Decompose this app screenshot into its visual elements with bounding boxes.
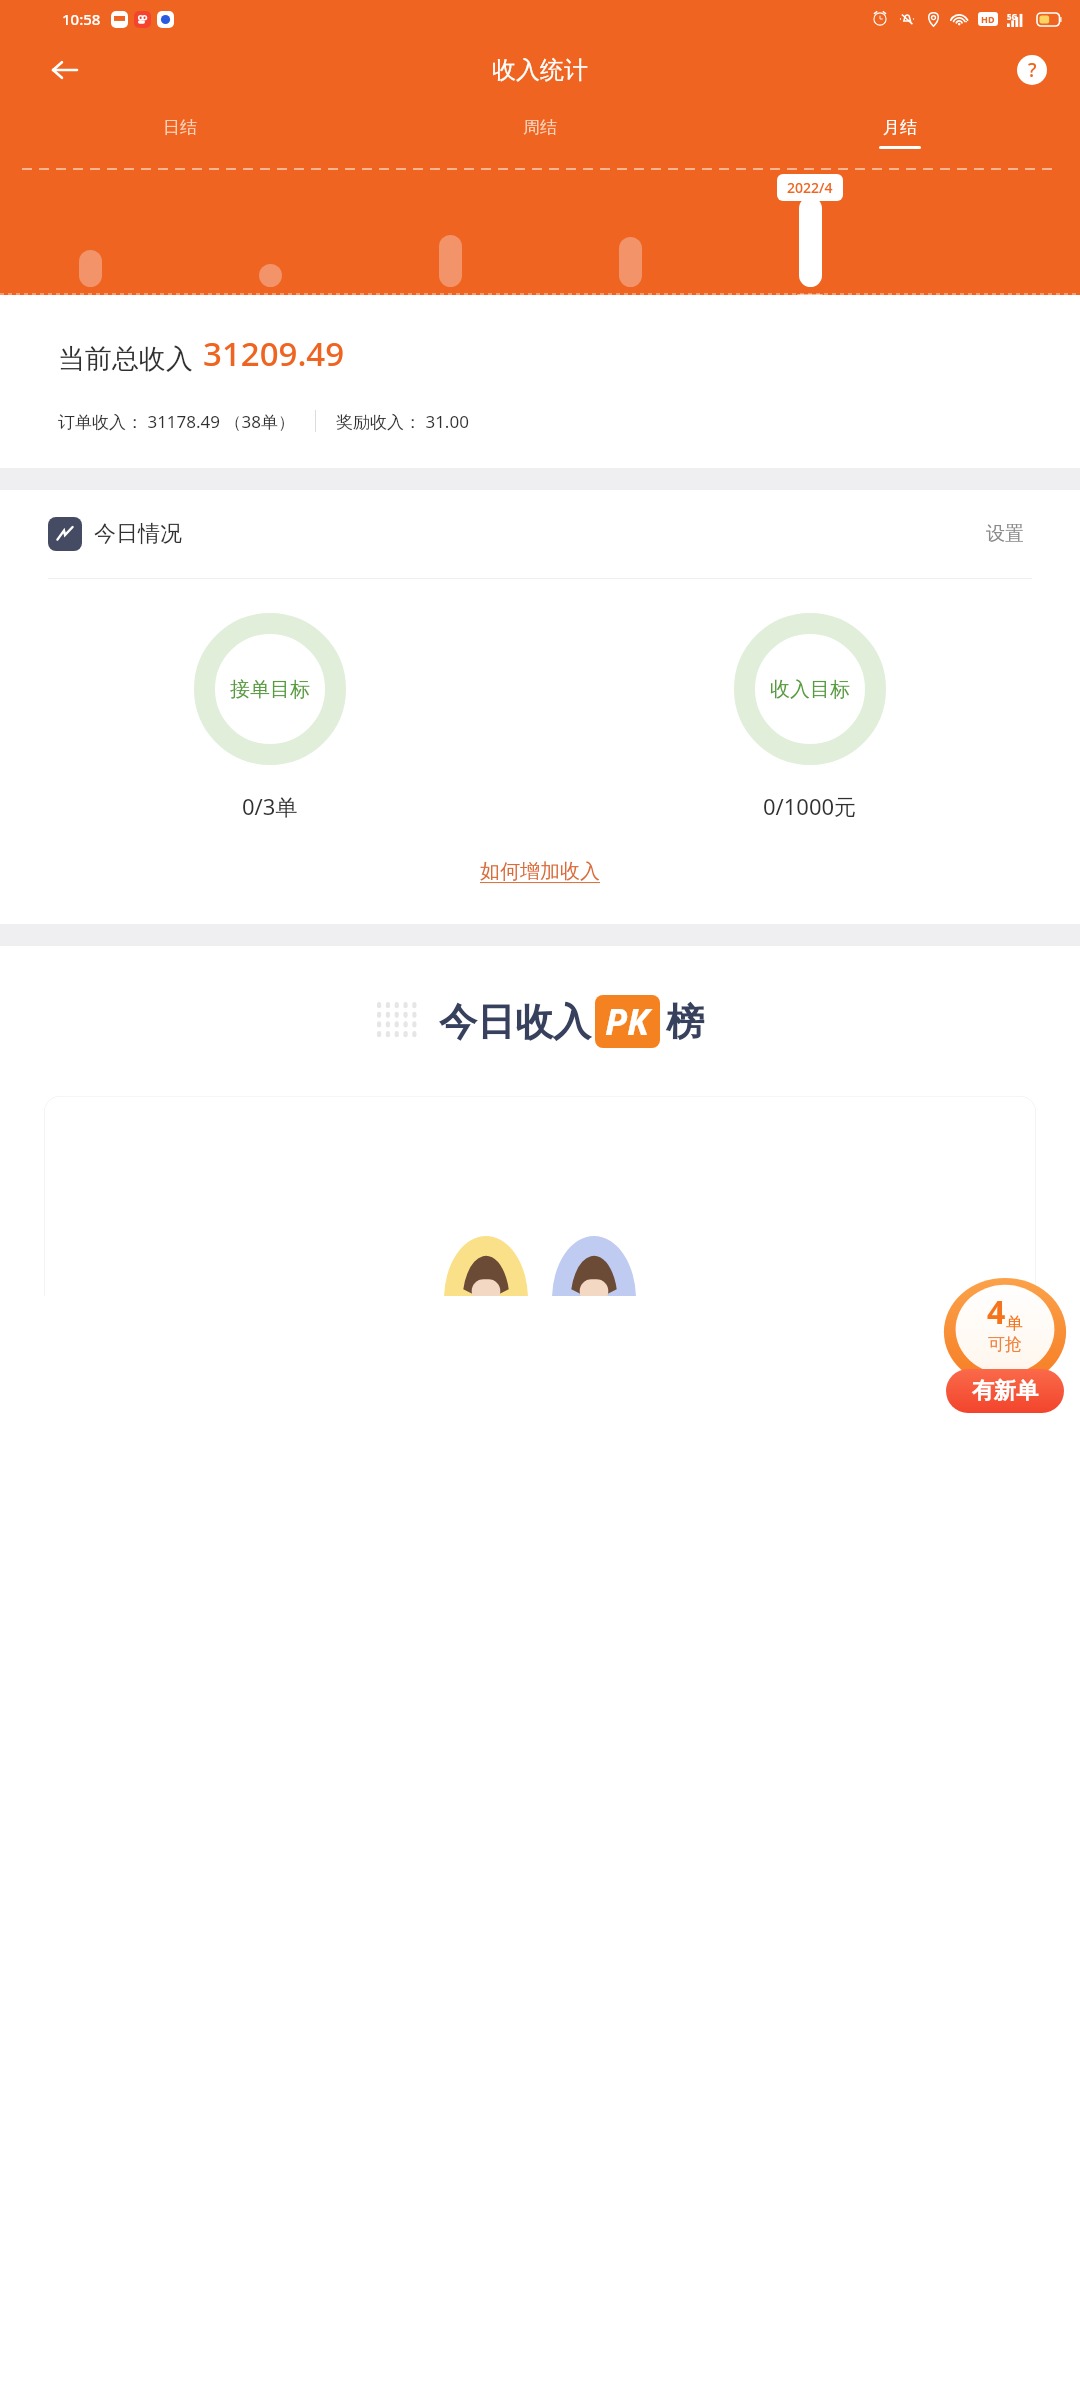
staticText: 设置 [986,522,1024,546]
button[interactable]: 4单可抢 有新单 [940,1278,1070,1413]
staticText: 月结 [883,117,917,138]
button[interactable]: 月结 [720,102,1080,164]
staticText: 收入目标 [770,677,850,702]
staticText: 奖励收入： 31.00 [336,410,469,433]
staticText: HD [981,13,995,25]
staticText: 今日情况 [94,520,182,548]
staticText: 5G [1007,11,1018,22]
staticText: 如何增加收入 [480,859,600,884]
staticText: 可抢 [988,1334,1022,1355]
button[interactable]: Back [40,46,88,94]
staticText: 订单收入： 31178.49 （38单） [58,410,295,433]
button[interactable]: 接单目标 [0,613,540,821]
staticText: 0/1000元 [763,791,857,821]
button[interactable]: 今日收入 [0,946,1080,1096]
button[interactable]: 日结 [0,102,360,164]
button[interactable]: 如何增加收入 [468,853,612,890]
staticText: 4 [987,1290,1006,1334]
staticText: 2022/4 [787,178,833,197]
button[interactable]: 收入目标 [540,613,1080,821]
staticText: 收入统计 [492,55,588,85]
staticText: 今日收入 [439,998,591,1046]
staticText: 31209.49 [203,331,345,376]
button[interactable]: Help [1010,48,1054,92]
button[interactable]: 设置 [978,514,1032,554]
staticText: 周结 [523,117,557,138]
staticText: PK [605,997,650,1046]
staticText: ? [1028,57,1037,83]
button[interactable] [44,1096,1036,1296]
staticText: 榜 [666,998,704,1046]
staticText: 单 [1006,1313,1023,1334]
staticText: 有新单 [972,1377,1038,1405]
staticText: 接单目标 [230,677,310,702]
staticText: 10:58 [62,9,101,29]
staticText: 日结 [163,117,197,138]
staticText: 当前总收入 [58,342,193,376]
staticText: 0/3单 [242,791,298,821]
button[interactable]: 周结 [360,102,720,164]
